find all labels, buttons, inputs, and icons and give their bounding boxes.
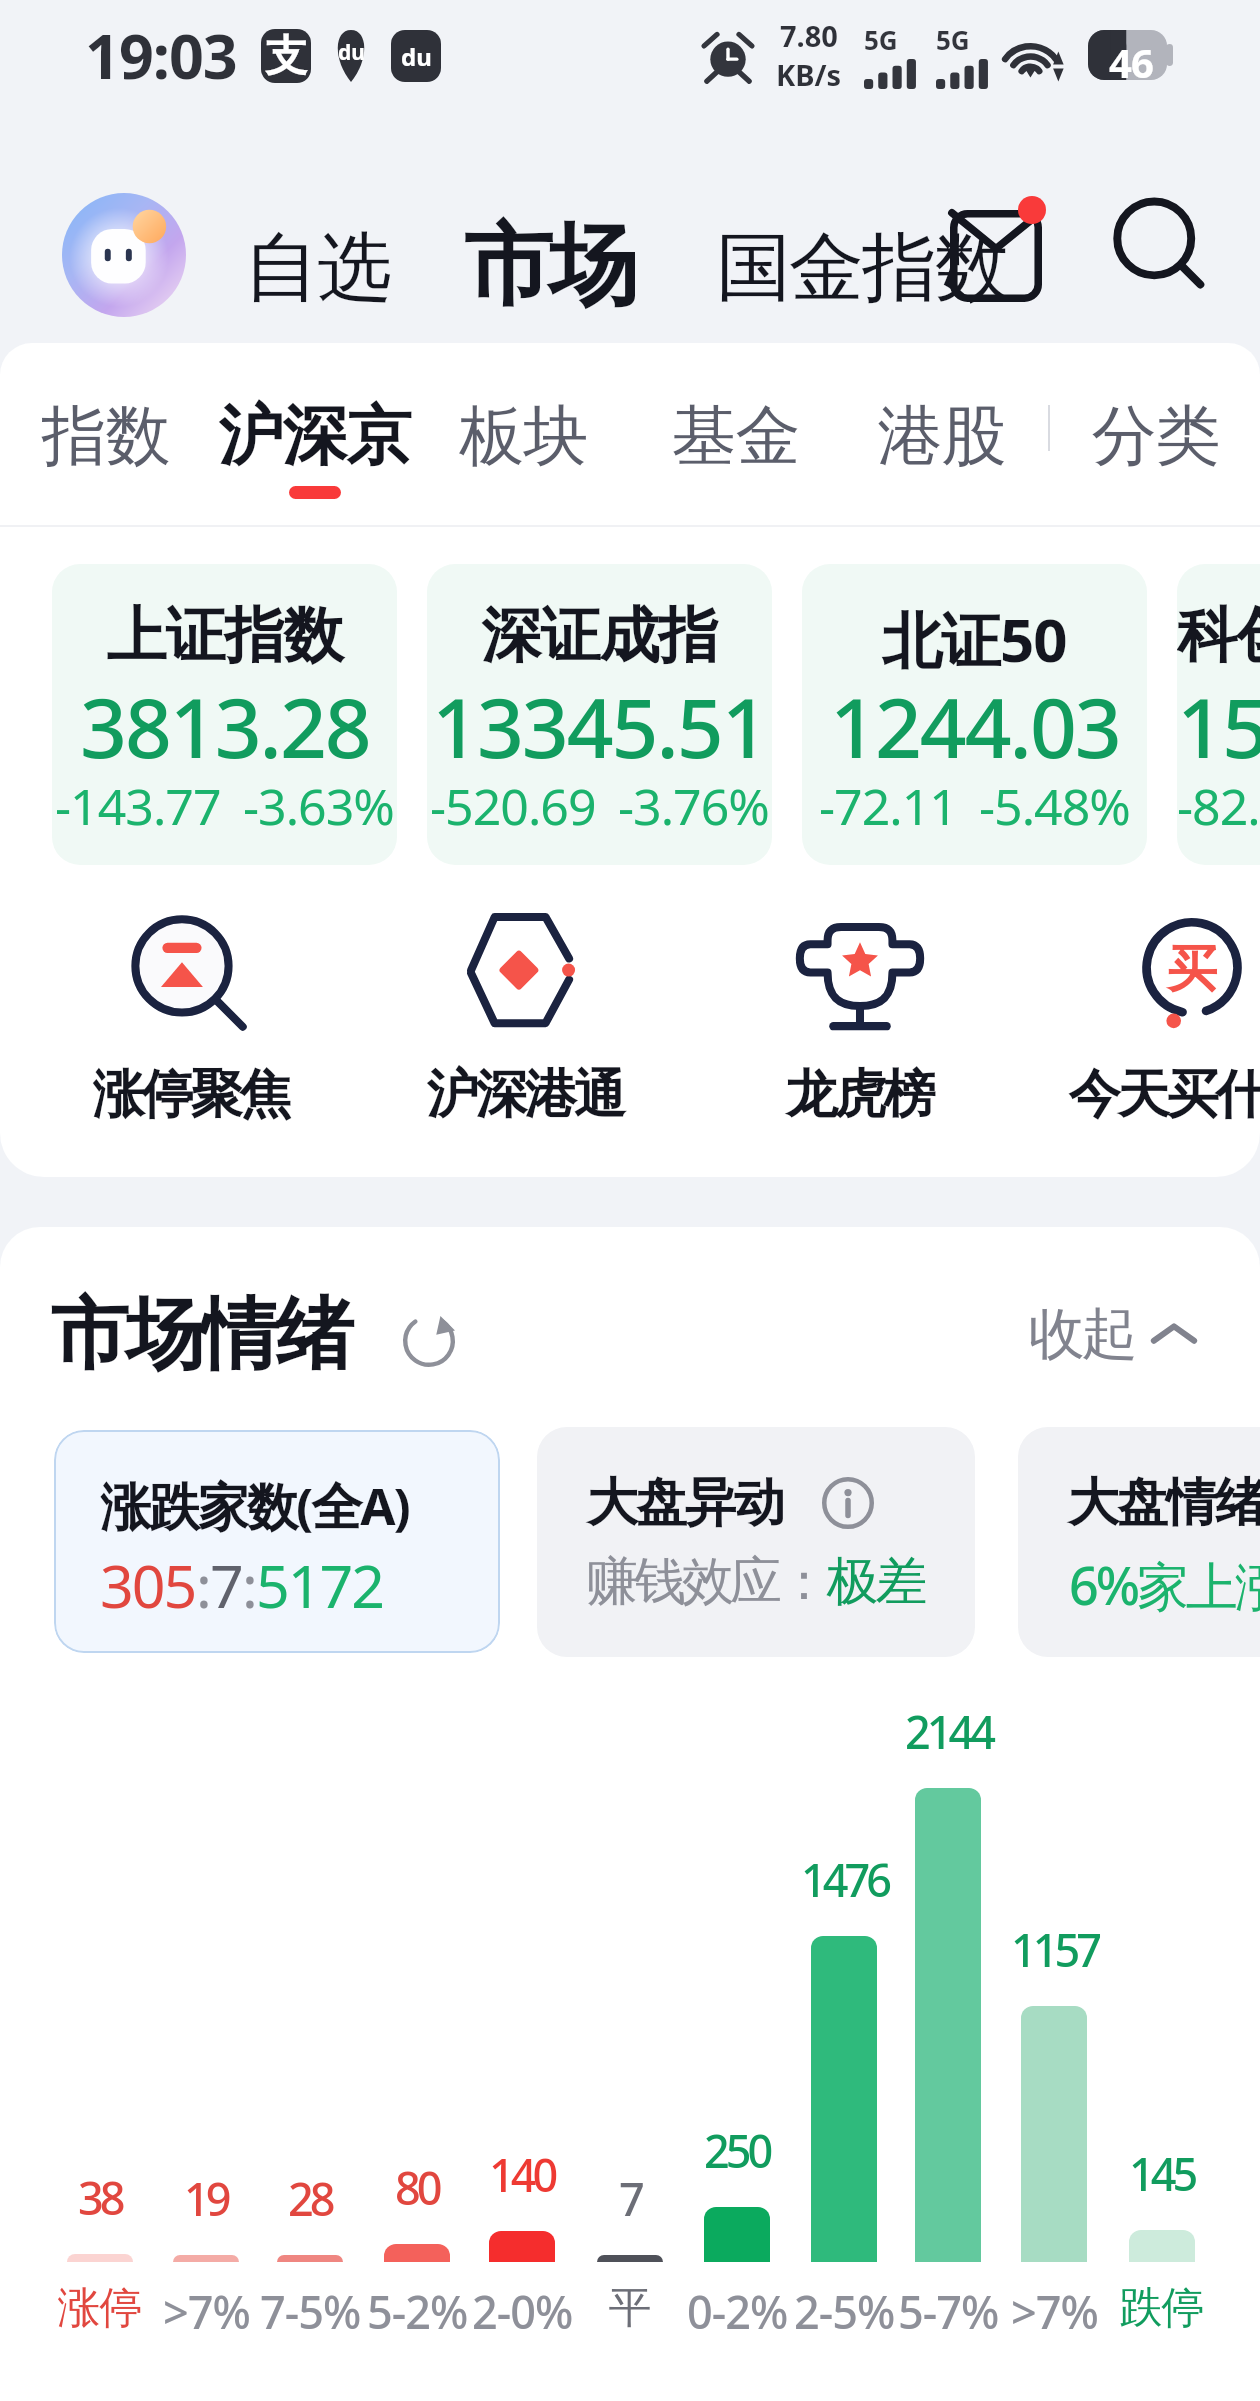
button[interactable]: 上证指数 [52, 564, 397, 865]
button[interactable]: 港股 [858, 395, 1026, 499]
staticText: 沪深港通 [428, 1062, 624, 1128]
button[interactable]: 涨停聚焦 [32, 917, 352, 1128]
button[interactable]: 国金指数 [717, 221, 1009, 315]
staticText: -72.11 [819, 772, 957, 840]
staticText: 2-5% [794, 2281, 895, 2342]
button[interactable]: 沪深港通 [366, 917, 686, 1128]
staticText: : [242, 1545, 256, 1625]
staticText: 涨停聚焦 [94, 1062, 290, 1128]
staticText: 科创综指 [1177, 598, 1260, 674]
staticText: 大盘异动 [588, 1471, 784, 1535]
staticText: 2-0% [472, 2281, 573, 2342]
staticText: 北证50 [882, 598, 1067, 680]
button[interactable]: 基金 [650, 395, 821, 499]
staticText: 5G [864, 22, 898, 57]
staticText: 19 [184, 2168, 228, 2229]
staticText: 涨停 [58, 2281, 142, 2335]
button[interactable]: 大盘异动 [537, 1427, 975, 1657]
staticText: 分类 [1092, 395, 1220, 477]
staticText: 46 [1109, 35, 1153, 85]
staticText: 5-2% [367, 2281, 468, 2342]
staticText: 板块 [460, 395, 588, 477]
staticText: 跌停 [1120, 2281, 1204, 2335]
button[interactable]: 板块 [442, 395, 605, 499]
button[interactable]: 收起 [1030, 1299, 1204, 1370]
staticText: -3.63% [243, 772, 394, 840]
staticText: 1157 [1011, 1919, 1098, 1980]
button[interactable]: 分类 [1072, 395, 1240, 499]
staticText: 19:03 [85, 14, 237, 97]
button[interactable]: 科创综指 [1177, 564, 1260, 865]
staticText: 250 [704, 2120, 770, 2181]
button[interactable]: 自选 [245, 221, 391, 315]
staticText: 6%家上涨 [1069, 1549, 1260, 1620]
staticText: 基金 [672, 395, 800, 477]
staticText: 7 [619, 2168, 641, 2229]
staticText: 今天买什么 [1070, 1062, 1260, 1128]
staticText: KB/s [776, 55, 842, 94]
staticText: 港股 [878, 395, 1006, 477]
staticText: 80 [395, 2157, 439, 2218]
staticText: 5-7% [898, 2281, 999, 2342]
staticText: 5172 [256, 1545, 383, 1625]
staticText: : [196, 1545, 210, 1625]
staticText: 1476 [801, 1849, 888, 1910]
button[interactable]: 市场情绪 [52, 1286, 352, 1384]
staticText: >7% [163, 2281, 250, 2342]
staticText: 龙虎榜 [787, 1062, 934, 1128]
button[interactable]: Search [1108, 196, 1212, 300]
staticText: 指数 [42, 395, 170, 477]
staticText: 7.80 [780, 16, 838, 55]
staticText: 自选 [245, 221, 391, 315]
staticText: 28 [288, 2168, 332, 2229]
staticText: 305 [100, 1545, 196, 1625]
staticText: 沪深京 [219, 395, 411, 477]
staticText: -143.77 [55, 772, 221, 840]
staticText: 大盘情绪 [1069, 1471, 1260, 1535]
staticText: 支 [265, 30, 307, 83]
staticText: 极差 [828, 1549, 926, 1615]
button[interactable]: 指数 [25, 395, 186, 499]
staticText: >7% [1011, 2281, 1098, 2342]
staticText: 13345.51 [432, 670, 767, 782]
staticText: 7-5% [260, 2281, 361, 2342]
staticText: 市场 [466, 210, 636, 322]
staticText: 深证成指 [482, 598, 718, 674]
staticText: -520.69 [430, 772, 596, 840]
staticText: 1502.77 [1177, 670, 1260, 782]
staticText: 140 [489, 2144, 555, 2205]
staticText: 平 [609, 2281, 651, 2335]
staticText: du [338, 38, 365, 67]
staticText: 7 [210, 1545, 242, 1625]
button[interactable]: 沪深京 [198, 395, 432, 499]
staticText: 市场情绪 [52, 1286, 352, 1384]
staticText: 3813.28 [80, 670, 370, 782]
staticText: 赚钱效应： [588, 1549, 828, 1615]
button[interactable]: 大盘情绪 [1018, 1427, 1260, 1657]
button[interactable]: 买 [1032, 917, 1260, 1128]
staticText: 收起 [1030, 1299, 1136, 1370]
staticText: du [401, 40, 432, 73]
staticText: 买 [1167, 938, 1217, 1001]
staticText: 145 [1129, 2143, 1195, 2204]
staticText: 0-2% [687, 2281, 788, 2342]
staticText: -5.48% [979, 772, 1130, 840]
staticText: 5G [936, 22, 970, 57]
staticText: -82.44 [1177, 772, 1260, 840]
staticText: 2144 [905, 1701, 992, 1762]
staticText: 国金指数 [717, 221, 1009, 315]
button[interactable]: 北证50 [802, 564, 1147, 865]
button[interactable]: Refresh [400, 1312, 458, 1370]
staticText: 涨跌家数(全A) [100, 1470, 409, 1540]
button[interactable]: 深证成指 [427, 564, 772, 865]
staticText: 1244.03 [830, 670, 1120, 782]
button[interactable]: 涨跌家数(全A) [54, 1430, 500, 1653]
button[interactable]: 龙虎榜 [700, 917, 1020, 1128]
staticText: -3.76% [618, 772, 769, 840]
button[interactable]: Messages [944, 196, 1052, 304]
staticText: 38 [78, 2167, 122, 2228]
button[interactable]: 市场 [466, 210, 636, 322]
staticText: 上证指数 [107, 598, 343, 674]
